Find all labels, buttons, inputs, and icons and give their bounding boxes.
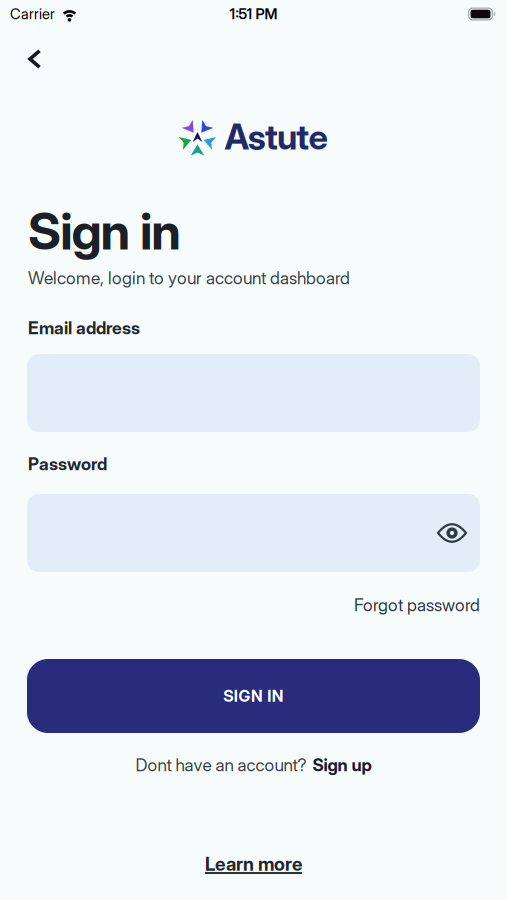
staticText: Welcome, login to your account dashboard: [28, 268, 350, 288]
button[interactable]: Password: [27, 494, 480, 572]
button[interactable]: Back: [28, 49, 42, 69]
button[interactable]: Learn more: [205, 853, 302, 875]
staticText: Sign in: [28, 201, 181, 261]
staticText: Dont have an account?: [135, 755, 306, 775]
button[interactable]: Sign up: [312, 755, 371, 775]
button[interactable]: SIGN IN: [27, 659, 480, 733]
staticText: Password: [28, 454, 107, 474]
staticText: SIGN IN: [223, 687, 284, 705]
staticText: Sign up: [312, 755, 371, 775]
button[interactable]: Forgot password: [354, 595, 480, 615]
staticText: Email address: [28, 318, 140, 338]
staticText: Astute: [224, 117, 327, 157]
staticText: Carrier: [10, 5, 55, 23]
staticText: 1:51 PM: [229, 5, 277, 23]
button[interactable]: Show password: [437, 522, 467, 544]
staticText: Forgot password: [354, 595, 480, 615]
staticText: Learn more: [205, 853, 302, 875]
